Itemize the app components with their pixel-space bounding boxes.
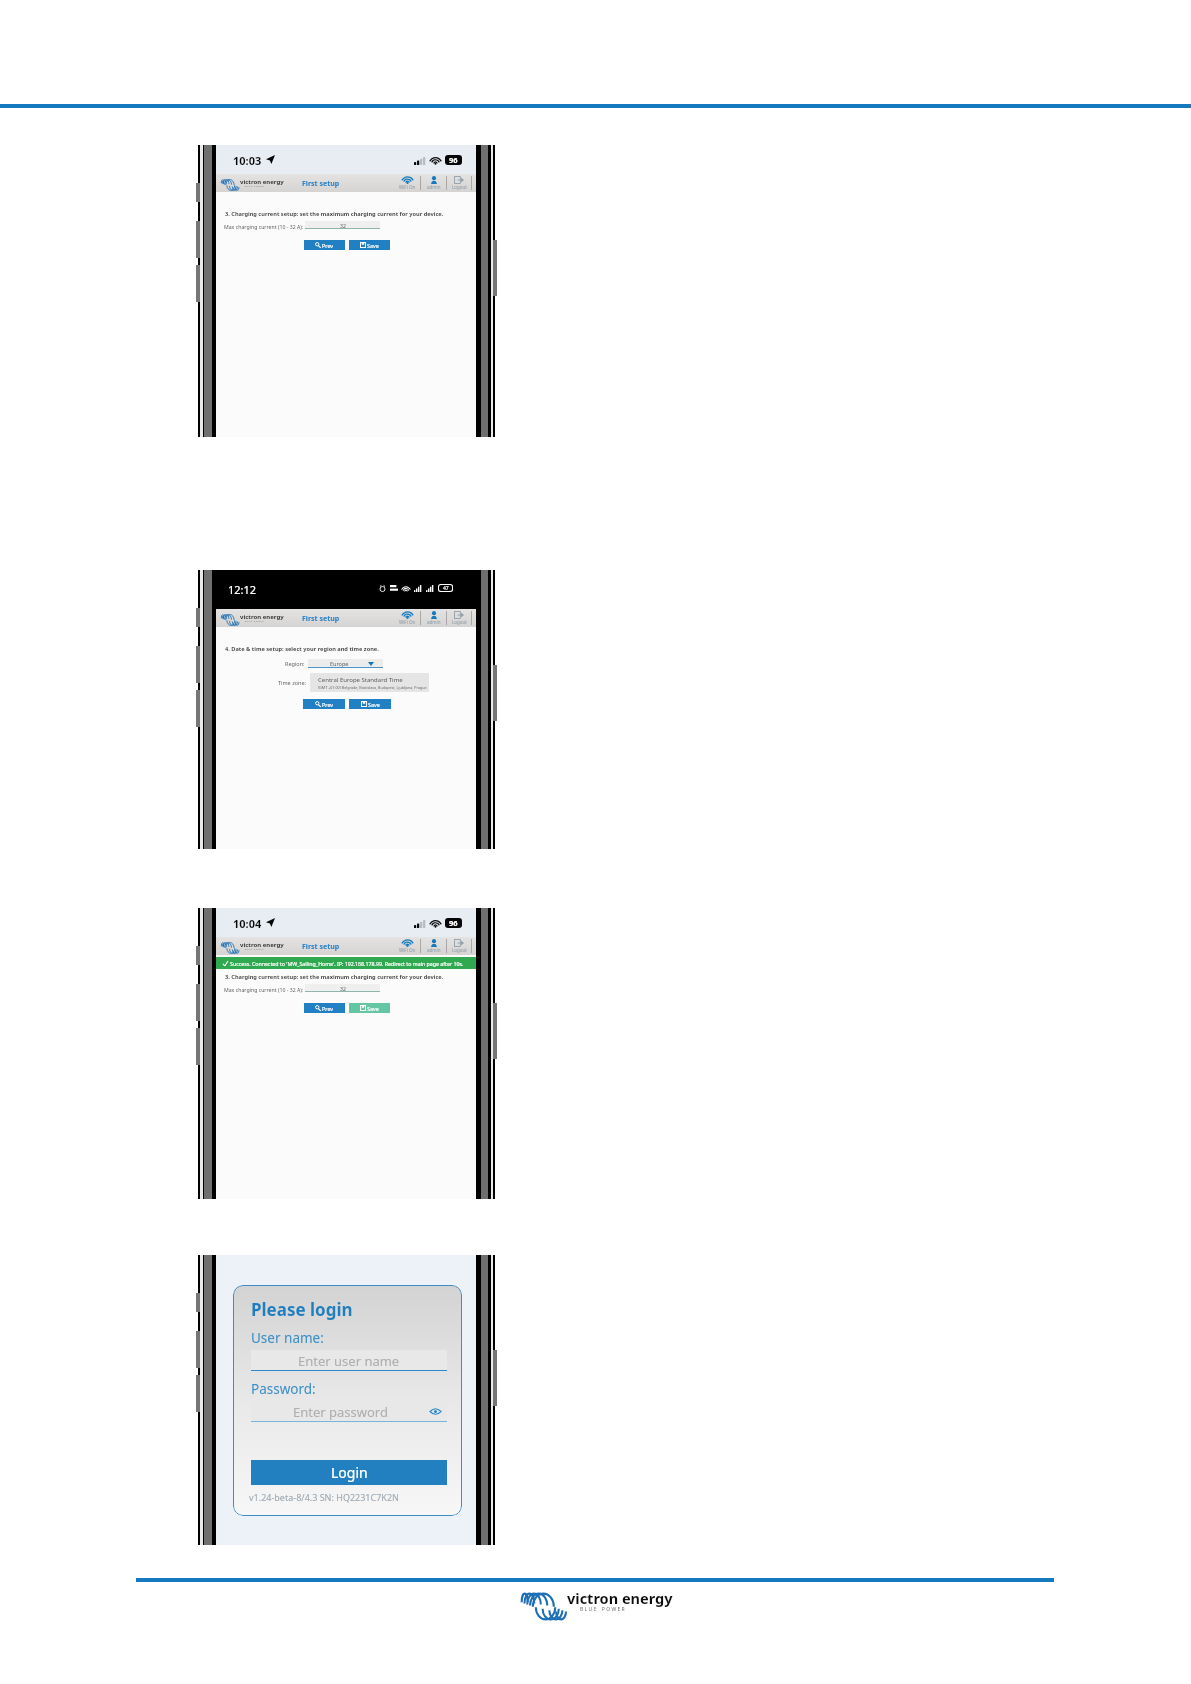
staticText: v1.24-beta-8/4.3 SN: HQ2231C7K2N [249, 1491, 399, 1503]
staticText: admin [427, 184, 441, 190]
staticText: B L U E P O W E R [245, 185, 264, 188]
staticText: 10:03 [233, 153, 262, 168]
staticText: Prev [322, 701, 334, 708]
staticText: WiFi On [399, 947, 416, 953]
button[interactable]: Europe [308, 659, 383, 668]
staticText: 3. Charging current setup: set the maxim… [225, 973, 444, 981]
staticText: Central Europe Standard Time [318, 676, 403, 684]
staticText: Time zone: [278, 679, 307, 686]
button[interactable]: Prev [304, 1003, 345, 1013]
staticText: WiFi On [399, 184, 416, 190]
staticText: 4. Date & time setup: select your region… [225, 645, 379, 653]
staticText: B L U E P O W E R [245, 620, 264, 623]
staticText: Europe [330, 660, 349, 667]
staticText: victron energy [240, 941, 284, 949]
staticText: Logout [452, 184, 467, 190]
staticText: Logout [452, 619, 467, 625]
staticText: Logout [452, 947, 467, 953]
staticText: Region: [285, 660, 305, 667]
staticText: victron energy [567, 1588, 673, 1608]
button[interactable]: Logout [447, 174, 471, 192]
staticText: First setup [302, 614, 340, 624]
staticText: 12:12 [228, 582, 257, 597]
staticText: Max charging current (10 - 32 A): [224, 223, 304, 230]
staticText: admin [427, 947, 441, 953]
staticText: WiFi On [399, 619, 416, 625]
button[interactable]: Prev [304, 240, 345, 250]
button[interactable]: Logout [447, 609, 471, 627]
button[interactable]: admin [421, 174, 446, 192]
staticText: 47 [443, 585, 449, 591]
button[interactable]: Login [251, 1460, 447, 1485]
staticText: (GMT +01:00) Belgrade, Bratislava, Budap… [318, 685, 427, 690]
staticText: Save [367, 242, 379, 249]
button[interactable]: Save [349, 699, 391, 709]
staticText: admin [427, 619, 441, 625]
staticText: Prev [322, 242, 334, 249]
button[interactable]: Enter password [251, 1401, 447, 1422]
staticText: Enter password [293, 1403, 388, 1421]
staticText: 3. Charging current setup: set the maxim… [225, 210, 444, 218]
staticText: 96 [449, 155, 458, 165]
staticText: First setup [302, 942, 340, 952]
staticText: 32 [340, 222, 346, 229]
staticText: Success. Connected to 'MW_Sailing_Home'.… [230, 960, 464, 967]
staticText: 10:04 [233, 916, 262, 931]
staticText: victron energy [240, 178, 284, 186]
other: Show password [430, 1408, 441, 1415]
staticText: Prev [322, 1005, 334, 1012]
button[interactable]: Central Europe Standard Time [310, 673, 429, 692]
staticText: Enter user name [298, 1352, 400, 1370]
button[interactable]: Logout [447, 937, 471, 955]
staticText: Save [367, 1005, 379, 1012]
staticText: victron energy [240, 613, 284, 621]
button[interactable]: admin [421, 937, 446, 955]
button[interactable]: Prev [303, 699, 345, 709]
staticText: First setup [302, 179, 340, 189]
staticText: Login [331, 1463, 368, 1482]
button[interactable]: admin [421, 609, 446, 627]
button[interactable]: 32 [305, 984, 380, 992]
button[interactable]: WiFi On [394, 937, 420, 955]
staticText: Max charging current (10 - 32 A): [224, 986, 304, 993]
button[interactable]: WiFi On [394, 174, 420, 192]
button[interactable]: WiFi On [394, 609, 420, 627]
staticText: User name: [251, 1329, 324, 1347]
staticText: 96 [449, 918, 458, 928]
button[interactable]: Enter user name [251, 1350, 447, 1371]
button[interactable]: Save [349, 240, 390, 250]
staticText: 32 [340, 985, 346, 992]
staticText: Password: [251, 1380, 316, 1398]
staticText: B L U E P O W E R [580, 1606, 625, 1613]
staticText: Save [368, 701, 380, 708]
staticText: Please login [251, 1298, 353, 1321]
staticText: B L U E P O W E R [245, 948, 264, 951]
button[interactable]: 32 [305, 221, 380, 229]
button[interactable]: Save [349, 1003, 390, 1013]
